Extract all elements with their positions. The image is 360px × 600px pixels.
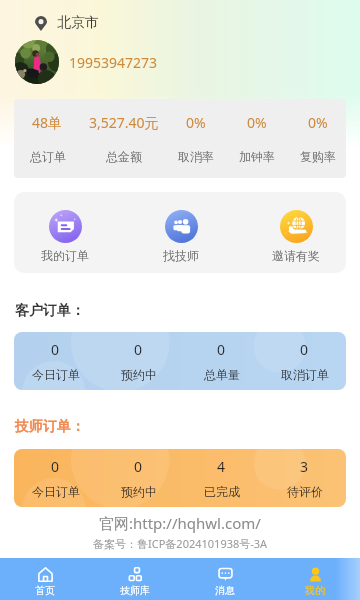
button[interactable]: 0 bbox=[14, 449, 97, 507]
staticText: 今日订单 bbox=[32, 484, 80, 499]
staticText: 3,527.40元 bbox=[89, 113, 159, 132]
staticText: 邀请有奖 bbox=[272, 248, 320, 263]
button[interactable]: Avatar bbox=[15, 40, 59, 84]
staticText: 取消订单 bbox=[281, 367, 329, 382]
staticText: 0% bbox=[247, 113, 267, 132]
button[interactable]: 4 bbox=[180, 449, 263, 507]
staticText: 4 bbox=[217, 457, 226, 476]
staticText: 已完成 bbox=[204, 484, 240, 499]
staticText: 找技师 bbox=[163, 248, 199, 263]
staticText: 技师库 bbox=[120, 584, 150, 597]
button[interactable]: 我的订单 bbox=[14, 192, 116, 273]
staticText: 总单量 bbox=[204, 367, 240, 382]
staticText: 待评价 bbox=[287, 484, 323, 499]
staticText: 消息 bbox=[215, 584, 235, 597]
staticText: 48单 bbox=[32, 113, 63, 132]
staticText: 客户订单： bbox=[15, 302, 85, 320]
staticText: 总订单 bbox=[30, 149, 66, 164]
staticText: 加钟率 bbox=[239, 149, 275, 164]
staticText: 0 bbox=[134, 340, 143, 359]
button[interactable]: 0 bbox=[97, 449, 180, 507]
button[interactable]: 0 bbox=[180, 332, 263, 390]
button[interactable]: 消息 bbox=[180, 558, 270, 600]
button[interactable]: 技师库 bbox=[90, 558, 180, 600]
staticText: 北京市 bbox=[57, 14, 99, 32]
staticText: 首页 bbox=[35, 584, 55, 597]
button[interactable]: 0 bbox=[263, 332, 346, 390]
staticText: 0 bbox=[134, 457, 143, 476]
button[interactable]: 首页 bbox=[0, 558, 90, 600]
staticText: 0% bbox=[186, 113, 206, 132]
staticText: 预约中 bbox=[121, 484, 157, 499]
staticText: 技师订单： bbox=[15, 418, 85, 436]
staticText: 我的 bbox=[305, 584, 325, 597]
staticText: 0 bbox=[300, 340, 309, 359]
staticText: 官网:http://hqhwl.com/ bbox=[99, 513, 261, 533]
staticText: 取消率 bbox=[178, 149, 214, 164]
button[interactable]: 3 bbox=[263, 449, 346, 507]
button[interactable]: 找技师 bbox=[116, 192, 246, 273]
staticText: 19953947273 bbox=[69, 53, 158, 72]
button[interactable]: 0 bbox=[14, 332, 97, 390]
staticText: 我的订单 bbox=[41, 248, 89, 263]
staticText: 0 bbox=[51, 340, 60, 359]
staticText: 0% bbox=[308, 113, 328, 132]
staticText: 今日订单 bbox=[32, 367, 80, 382]
button[interactable]: 我的 bbox=[270, 558, 360, 600]
button[interactable]: 邀请有奖 bbox=[246, 192, 346, 273]
other: Location bbox=[35, 16, 47, 31]
staticText: 复购率 bbox=[300, 149, 336, 164]
staticText: 总金额 bbox=[106, 149, 142, 164]
staticText: 0 bbox=[217, 340, 226, 359]
staticText: 备案号：鲁ICP备2024101938号-3A bbox=[93, 536, 268, 551]
staticText: 预约中 bbox=[121, 367, 157, 382]
staticText: 3 bbox=[300, 457, 309, 476]
staticText: 0 bbox=[51, 457, 60, 476]
button[interactable]: 0 bbox=[97, 332, 180, 390]
